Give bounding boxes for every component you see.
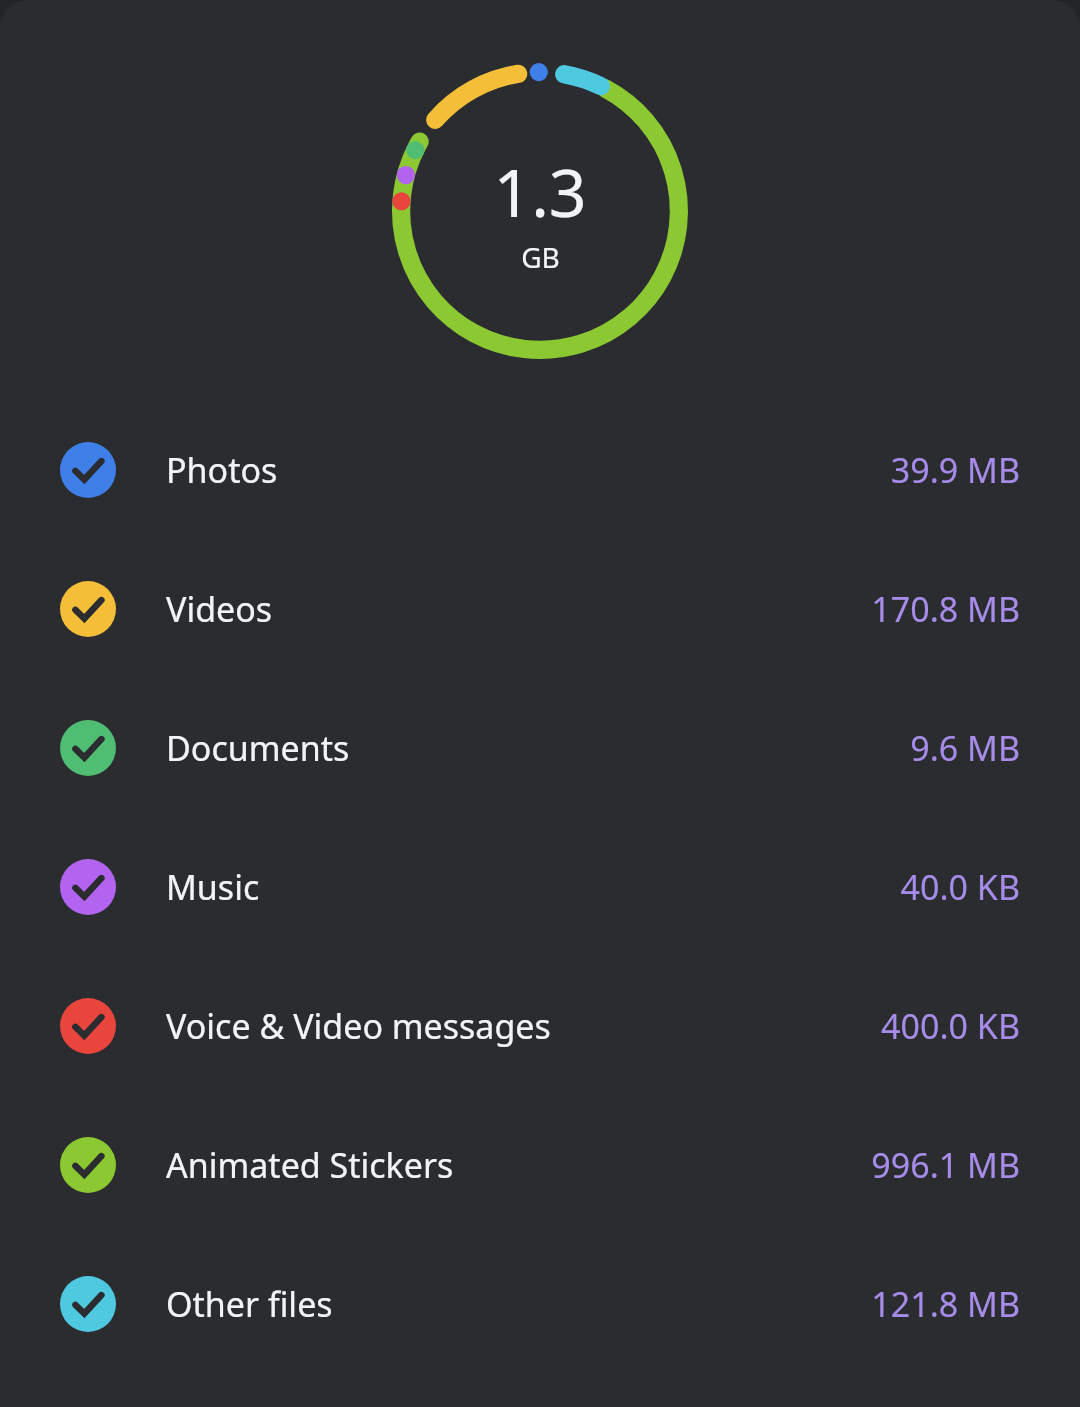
staticText: Animated Stickers [166,1142,859,1188]
staticText: Documents [166,725,898,771]
staticText: 400.0 KB [881,1003,1020,1049]
staticText: 9.6 MB [910,725,1020,771]
staticText: Videos [166,586,859,632]
other: Selected [60,720,116,776]
other: Selected [60,1276,116,1332]
staticText: Photos [166,447,878,493]
button[interactable]: Selected [0,956,1080,1095]
button[interactable]: Selected [0,400,1080,539]
button[interactable]: Selected [0,1095,1080,1234]
button[interactable]: Selected [0,1234,1080,1373]
other: Selected [60,1137,116,1193]
staticText: 39.9 MB [890,447,1020,493]
staticText: 40.0 KB [900,864,1020,910]
staticText: Other files [166,1281,859,1327]
staticText: 121.8 MB [871,1281,1020,1327]
staticText: Voice & Video messages [166,1003,869,1049]
other: Selected [60,859,116,915]
button[interactable]: Selected [0,817,1080,956]
other: Selected [60,581,116,637]
button[interactable]: Selected [0,539,1080,678]
other: Selected [60,998,116,1054]
staticText: 170.8 MB [871,586,1020,632]
button[interactable]: Selected [0,678,1080,817]
other: Selected [60,442,116,498]
staticText: GB [521,238,560,276]
staticText: Music [166,864,888,910]
staticText: 1.3 [493,146,587,236]
staticText: 996.1 MB [871,1142,1020,1188]
